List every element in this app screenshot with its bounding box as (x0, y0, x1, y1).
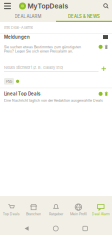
staticText: Neues Stichwort (z. B. Galaxy S10) (4, 65, 63, 70)
button[interactable]: Ratgeber (45, 196, 67, 222)
staticText: Top Deals (3, 212, 20, 216)
staticText: Ihre Deal-Alarme (4, 25, 33, 30)
button[interactable]: Branchen (22, 196, 45, 222)
button[interactable]: DEALS & NEWS (56, 12, 112, 22)
staticText: Eine Nachricht täglich von der Redaktion… (4, 98, 103, 103)
button[interactable]: Top Deals (0, 196, 22, 222)
button[interactable]: Alarm aktiv (16, 80, 19, 83)
button[interactable]: Neues Stichwort (z. B. Galaxy S10) (0, 57, 112, 72)
staticText: Sie suchen etwas Bestimmtes zum günstigs… (4, 45, 81, 53)
button[interactable]: Home (53, 226, 58, 231)
staticText: DEAL ALARM (14, 14, 41, 19)
button[interactable]: Search (100, 1, 112, 11)
button[interactable]: Lineal Top Deals (0, 88, 112, 106)
staticText: Branchen (26, 212, 41, 216)
staticText: MyTopDeals (27, 2, 68, 10)
staticText: Deal Alarm (92, 212, 110, 216)
button[interactable]: Deal Alarm (90, 196, 112, 222)
button[interactable]: Menu (0, 1, 19, 10)
button[interactable]: PS5 (4, 78, 14, 85)
staticText: Meldungen (4, 34, 30, 40)
button[interactable]: Recents (83, 226, 87, 231)
button[interactable]: Meldungen (0, 34, 112, 57)
staticText: PS5 (6, 79, 12, 84)
staticText: Ratgeber (49, 212, 63, 216)
button[interactable]: Mein Profil (67, 196, 90, 222)
staticText: Mein Profil (70, 212, 87, 216)
staticText: DEALS & NEWS (68, 14, 100, 19)
staticText: Lineal Top Deals (4, 91, 40, 96)
button[interactable]: Back (25, 226, 29, 231)
button[interactable]: DEAL ALARM (0, 12, 56, 22)
